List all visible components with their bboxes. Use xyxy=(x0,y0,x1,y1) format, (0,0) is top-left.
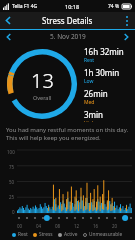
staticText: Overall xyxy=(33,94,52,101)
staticText: 16 xyxy=(93,223,99,229)
staticText: 16h 32min xyxy=(84,46,124,57)
staticText: Med xyxy=(84,99,95,106)
staticText: You had many restful moments on this day… xyxy=(6,126,129,142)
staticText: 25 xyxy=(9,194,15,200)
staticText: 0 xyxy=(12,209,15,215)
staticText: 13 xyxy=(31,67,54,94)
button[interactable]: Unmeasurable xyxy=(83,231,123,238)
button[interactable]: Next day xyxy=(117,30,135,43)
staticText: Telia F1 4G xyxy=(12,3,38,10)
staticText: Active xyxy=(64,231,78,238)
staticText: 1h 30min xyxy=(84,67,120,78)
staticText: 08 xyxy=(55,223,61,229)
staticText: 100 xyxy=(7,149,15,155)
staticText: 04 xyxy=(36,223,42,229)
staticText: 3min xyxy=(84,109,104,120)
staticText: 10:18 xyxy=(65,3,80,10)
staticText: 26min xyxy=(84,88,108,99)
staticText: 74 % xyxy=(108,3,120,10)
button[interactable]: Active xyxy=(58,231,78,238)
staticText: Rest xyxy=(18,231,28,238)
button[interactable]: Stress xyxy=(33,231,53,238)
button[interactable]: Back xyxy=(0,12,17,29)
staticText: Stress Details xyxy=(42,15,93,26)
staticText: Low xyxy=(84,78,94,85)
staticText: 20 xyxy=(112,223,118,229)
staticText: 5. Nov 2019 xyxy=(50,32,86,41)
button[interactable]: Previous day xyxy=(0,30,18,43)
staticText: 00 xyxy=(17,223,23,229)
staticText: Rest xyxy=(84,57,95,64)
staticText: 12 xyxy=(74,223,80,229)
button[interactable]: More options xyxy=(118,12,135,29)
button[interactable]: Rest xyxy=(12,231,28,238)
staticText: High xyxy=(84,120,96,122)
staticText: 75 xyxy=(9,164,15,170)
staticText: 50 xyxy=(9,179,15,185)
staticText: Unmeasurable xyxy=(89,231,123,238)
staticText: Stress xyxy=(39,231,53,238)
